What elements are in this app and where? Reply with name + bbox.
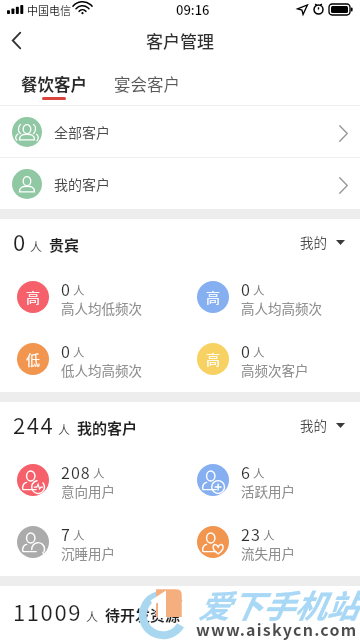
staticText: 我的客户	[77, 417, 138, 439]
staticText: 我的	[300, 232, 327, 252]
staticText: 人	[253, 465, 265, 482]
staticText: 09:16	[176, 0, 210, 19]
staticText: 意向用户	[61, 481, 115, 501]
staticText: 高	[206, 287, 220, 307]
button[interactable]: 208	[0, 449, 180, 511]
staticText: 活跃用户	[241, 481, 295, 501]
staticText: 11009	[13, 595, 83, 627]
staticText: 低	[26, 349, 40, 369]
staticText: 宴会客户	[114, 72, 180, 96]
staticText: 人	[73, 344, 85, 361]
button[interactable]: 返回	[0, 24, 32, 56]
button[interactable]: 6	[180, 449, 360, 511]
button[interactable]: 高	[180, 266, 360, 328]
staticText: 沉睡用户	[61, 543, 115, 563]
staticText: 人	[93, 465, 105, 482]
staticText: 高频次客户	[241, 360, 309, 380]
staticText: 爱下手机站	[198, 581, 359, 627]
staticText: 人	[253, 282, 265, 299]
staticText: 244	[13, 408, 55, 440]
staticText: 0	[61, 339, 71, 362]
staticText: 高	[206, 349, 220, 369]
staticText: 人	[253, 344, 265, 361]
staticText: 低人均高频次	[61, 360, 142, 380]
button[interactable]: 23	[180, 511, 360, 573]
staticText: 贵宾	[49, 234, 80, 256]
staticText: 客户管理	[146, 28, 214, 53]
staticText: 人	[263, 527, 275, 544]
staticText: 人	[30, 238, 43, 255]
button[interactable]: 低	[0, 328, 180, 390]
staticText: 7	[61, 522, 71, 545]
staticText: 23	[241, 522, 261, 545]
staticText: 我的客户	[54, 174, 110, 194]
button[interactable]: 全部客户	[0, 106, 360, 157]
staticText: 0	[13, 225, 27, 257]
button[interactable]: 我的	[300, 415, 360, 435]
staticText: 待开发资源	[105, 604, 181, 626]
staticText: 人	[73, 282, 85, 299]
staticText: 人	[73, 527, 85, 544]
staticText: 0	[241, 339, 251, 362]
staticText: 人	[58, 421, 71, 438]
staticText: 人	[86, 608, 99, 625]
staticText: 流失用户	[241, 543, 295, 563]
button[interactable]: 宴会客户	[114, 56, 180, 106]
staticText: www.aiskycn.com	[196, 617, 358, 640]
staticText: 高人均高频次	[241, 298, 322, 318]
staticText: 中国电信	[27, 2, 71, 18]
staticText: 208	[61, 460, 91, 483]
button[interactable]: 我的	[300, 232, 360, 252]
button[interactable]: 高	[180, 328, 360, 390]
button[interactable]: 我的客户	[0, 158, 360, 209]
button[interactable]: 高	[0, 266, 180, 328]
staticText: 全部客户	[54, 122, 110, 142]
staticText: 6	[241, 460, 251, 483]
staticText: 高人均低频次	[61, 298, 142, 318]
button[interactable]: 餐饮客户	[21, 56, 87, 106]
staticText: 0	[241, 277, 251, 300]
staticText: 高	[26, 287, 40, 307]
staticText: 0	[61, 277, 71, 300]
staticText: 我的	[300, 415, 327, 435]
button[interactable]: 7	[0, 511, 180, 573]
staticText: 餐饮客户	[21, 72, 87, 96]
